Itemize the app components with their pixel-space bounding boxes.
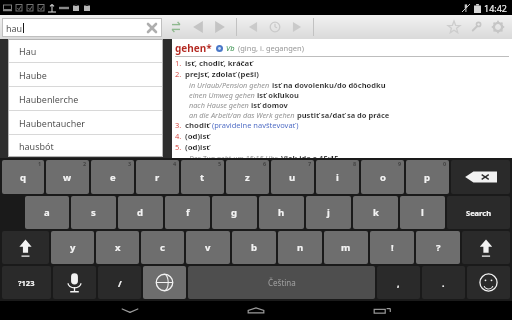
button[interactable]: 1. xyxy=(175,58,509,69)
staticText: a xyxy=(44,206,50,219)
button[interactable]: 4 xyxy=(136,160,179,194)
button[interactable]: 5. xyxy=(175,142,509,153)
staticText: (od)isť xyxy=(185,131,210,142)
staticText: l xyxy=(421,206,424,219)
button[interactable]: Clear xyxy=(144,20,160,36)
button[interactable]: x xyxy=(96,231,139,264)
button[interactable]: ?123 xyxy=(2,266,51,299)
button[interactable]: h xyxy=(259,196,304,229)
staticText: 1. xyxy=(175,58,182,68)
staticText: y xyxy=(70,241,76,254)
button[interactable]: Search options xyxy=(465,16,487,38)
staticText: u xyxy=(289,171,296,184)
button[interactable]: ? xyxy=(416,231,460,264)
staticText: 8 xyxy=(353,160,357,167)
staticText: gehen* xyxy=(175,41,212,55)
button[interactable]: Previous entry xyxy=(242,16,264,38)
button[interactable]: Haubentaucher xyxy=(8,111,163,134)
button[interactable]: 3. xyxy=(175,120,509,131)
button[interactable]: 2. xyxy=(175,69,509,80)
button[interactable]: Voice input xyxy=(53,266,96,299)
staticText: , xyxy=(397,277,400,289)
staticText: 1 xyxy=(38,160,42,167)
button[interactable]: d xyxy=(118,196,163,229)
staticText: 5. xyxy=(175,142,182,152)
staticText: ?123 xyxy=(18,278,35,288)
button[interactable]: , xyxy=(377,266,420,299)
button[interactable]: Shift xyxy=(2,231,49,264)
staticText: chodiť xyxy=(185,120,210,131)
staticText: einen Umweg gehen xyxy=(189,90,255,100)
staticText: b xyxy=(251,241,258,254)
button[interactable]: Favourite xyxy=(443,16,465,38)
staticText: Vlak ide o 15:15. xyxy=(281,153,341,158)
button[interactable]: Back xyxy=(187,16,209,38)
button[interactable]: History xyxy=(264,16,286,38)
staticText: f xyxy=(186,206,190,219)
staticText: e xyxy=(110,171,116,184)
button[interactable]: 2 xyxy=(46,160,89,194)
staticText: hau xyxy=(6,22,23,34)
button[interactable]: Home xyxy=(233,301,279,320)
button[interactable]: 1 xyxy=(2,160,44,194)
staticText: 6 xyxy=(263,160,267,167)
button[interactable]: 9 xyxy=(361,160,404,194)
staticText: s xyxy=(91,206,96,219)
staticText: g xyxy=(231,206,238,219)
staticText: isť, chodiť, kráčať xyxy=(185,58,253,69)
staticText: an die Arbeit/an das Werk gehen xyxy=(189,110,295,120)
button[interactable]: s xyxy=(71,196,116,229)
button[interactable]: Čeština xyxy=(188,266,375,299)
button[interactable]: 5 xyxy=(181,160,224,194)
button[interactable]: Search xyxy=(447,196,510,229)
staticText: ? xyxy=(436,241,441,254)
staticText: 2. xyxy=(175,69,182,79)
button[interactable]: 3 xyxy=(91,160,134,194)
staticText: 0 xyxy=(443,160,447,167)
button[interactable]: Emoji xyxy=(467,266,510,299)
button[interactable]: a xyxy=(25,196,69,229)
button[interactable]: hausbót xyxy=(8,135,163,157)
button[interactable]: c xyxy=(141,231,184,264)
button[interactable]: 4. xyxy=(175,131,509,142)
button[interactable]: k xyxy=(353,196,398,229)
button[interactable]: Hau xyxy=(8,39,163,62)
button[interactable]: Shift xyxy=(462,231,510,264)
button[interactable]: Forward xyxy=(209,16,231,38)
button[interactable]: b xyxy=(232,231,276,264)
button[interactable]: hau xyxy=(2,18,162,37)
button[interactable]: / xyxy=(98,266,141,299)
staticText: d xyxy=(137,206,144,219)
button[interactable]: ! xyxy=(370,231,414,264)
button[interactable]: 0 xyxy=(406,160,449,194)
button[interactable]: y xyxy=(51,231,94,264)
staticText: k xyxy=(373,206,379,219)
button[interactable]: Haubenlerche xyxy=(8,87,163,110)
button[interactable]: Next entry xyxy=(286,16,308,38)
button[interactable]: m xyxy=(324,231,368,264)
staticText: Haubenlerche xyxy=(19,93,79,105)
button[interactable]: 8 xyxy=(316,160,359,194)
button[interactable]: g xyxy=(212,196,257,229)
button[interactable]: Hide keyboard xyxy=(107,301,153,320)
button[interactable]: Settings xyxy=(487,16,509,38)
staticText: isť domov xyxy=(251,100,288,110)
staticText: Čeština xyxy=(268,277,296,288)
button[interactable]: Swap languages xyxy=(165,16,187,38)
button[interactable]: f xyxy=(165,196,210,229)
staticText: prejsť, zdolať (peši) xyxy=(185,69,259,80)
staticText: v xyxy=(205,241,211,254)
button[interactable]: l xyxy=(400,196,445,229)
button[interactable]: . xyxy=(422,266,465,299)
button[interactable]: j xyxy=(306,196,351,229)
button[interactable]: 7 xyxy=(271,160,314,194)
button[interactable]: Recent apps xyxy=(359,301,405,320)
button[interactable]: 6 xyxy=(226,160,269,194)
button[interactable]: Delete xyxy=(451,160,510,194)
button[interactable]: Haube xyxy=(8,63,163,86)
staticText: p xyxy=(424,171,431,184)
button[interactable]: Change language xyxy=(143,266,186,299)
button[interactable]: v xyxy=(186,231,230,264)
staticText: 5 xyxy=(218,160,222,167)
button[interactable]: n xyxy=(278,231,322,264)
